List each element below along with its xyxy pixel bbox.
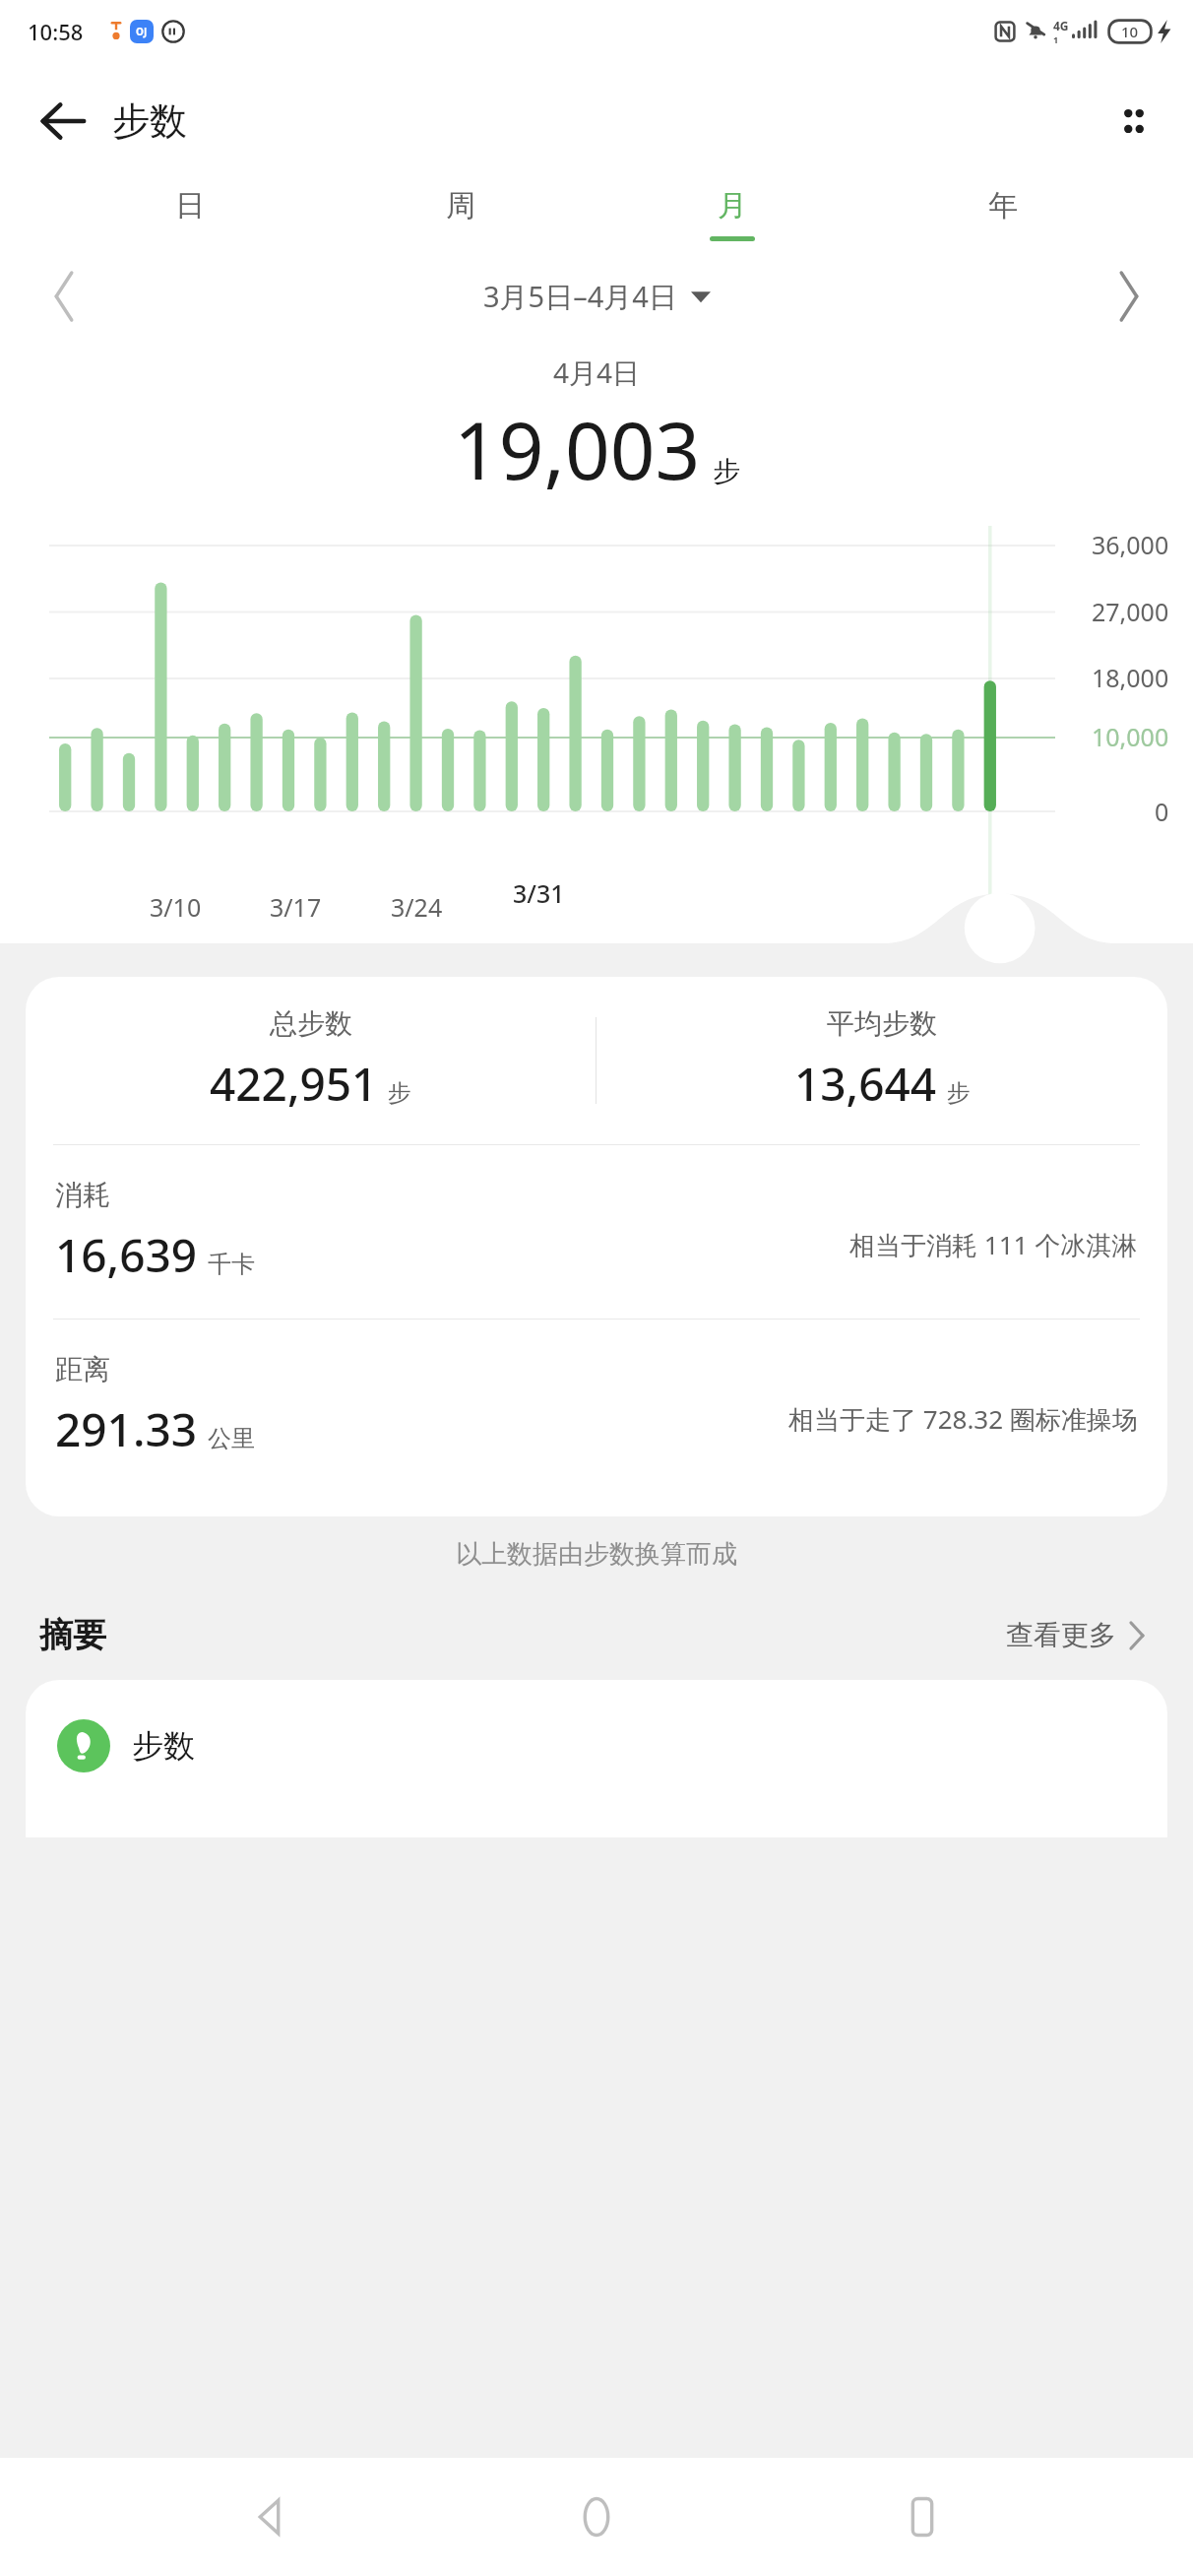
- button[interactable]: 日: [153, 179, 227, 249]
- staticText: 日: [175, 187, 205, 225]
- staticText: 27,000: [1092, 595, 1169, 628]
- button[interactable]: Next period: [1095, 262, 1163, 331]
- staticText: 查看更多: [1006, 1618, 1116, 1652]
- staticText: 16,639: [55, 1224, 198, 1286]
- staticText: 422,951: [210, 1053, 378, 1115]
- staticText: 10:58: [28, 17, 84, 46]
- staticText: 以上数据由步数换算而成: [0, 1538, 1193, 1571]
- staticText: 3月5日–4月4日: [483, 277, 677, 316]
- staticText: 摘要: [39, 1614, 106, 1656]
- button[interactable]: 年: [966, 179, 1040, 249]
- staticText: 291.33: [55, 1398, 198, 1460]
- staticText: 相当于走了 728.32 圈标准操场: [788, 1401, 1138, 1437]
- staticText: 19,003: [454, 395, 701, 502]
- staticText: 13,644: [794, 1053, 937, 1115]
- button[interactable]: 步数: [26, 1680, 1167, 1837]
- staticText: 距离: [55, 1352, 110, 1386]
- button[interactable]: Back: [24, 82, 102, 161]
- staticText: 步: [388, 1078, 411, 1108]
- button[interactable]: Home: [542, 2463, 651, 2571]
- button[interactable]: More options: [1095, 82, 1173, 161]
- staticText: 3/24: [391, 890, 443, 924]
- staticText: 0: [1155, 795, 1169, 828]
- staticText: 10: [1121, 22, 1139, 41]
- button[interactable]: 3月5日–4月4日: [483, 277, 711, 316]
- staticText: 18,000: [1092, 661, 1169, 694]
- staticText: 平均步数: [827, 1006, 937, 1041]
- button[interactable]: Recent apps: [868, 2463, 976, 2571]
- staticText: 公里: [208, 1424, 255, 1453]
- button[interactable]: 周: [423, 179, 498, 249]
- staticText: 4G: [1053, 18, 1069, 33]
- staticText: 步数: [112, 97, 187, 145]
- staticText: 3/31: [513, 876, 565, 910]
- staticText: 36,000: [1092, 528, 1169, 561]
- staticText: 相当于消耗 111 个冰淇淋: [849, 1227, 1138, 1262]
- staticText: 10,000: [1092, 720, 1169, 753]
- staticText: 月: [718, 187, 747, 225]
- staticText: 总步数: [270, 1006, 352, 1041]
- staticText: OJ: [136, 25, 148, 38]
- button[interactable]: Previous period: [30, 262, 98, 331]
- button[interactable]: Back: [218, 2463, 326, 2571]
- staticText: 步: [947, 1078, 971, 1108]
- staticText: 步数: [132, 1726, 195, 1766]
- button[interactable]: 查看更多: [998, 1610, 1154, 1660]
- staticText: 3/17: [270, 890, 322, 924]
- staticText: 千卡: [208, 1250, 255, 1279]
- staticText: 步: [713, 454, 740, 488]
- staticText: 消耗: [55, 1178, 110, 1212]
- staticText: 年: [988, 187, 1018, 225]
- staticText: 3/10: [150, 890, 202, 924]
- staticText: 1: [1053, 33, 1059, 45]
- staticText: 周: [446, 187, 475, 225]
- staticText: 4月4日: [553, 354, 641, 391]
- button[interactable]: 月: [695, 179, 770, 249]
